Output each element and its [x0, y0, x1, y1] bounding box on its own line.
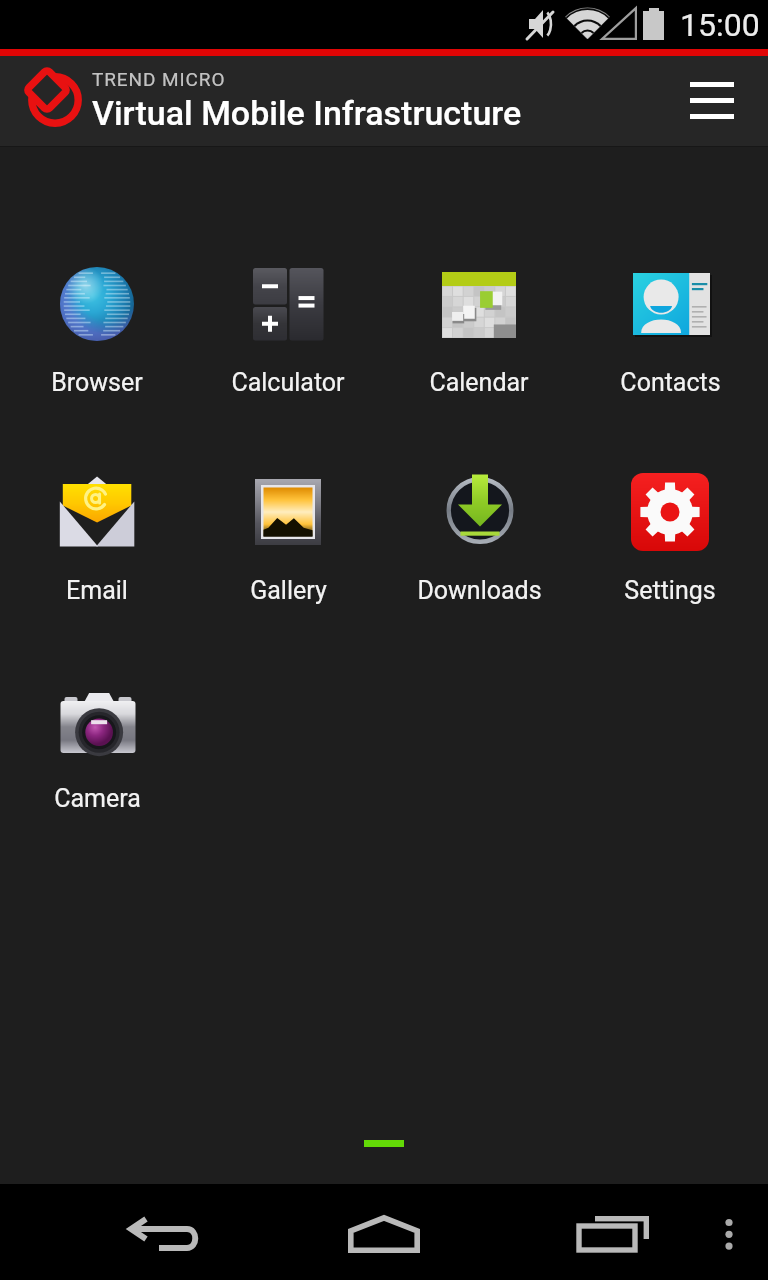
button[interactable]: Calculator [192, 264, 384, 416]
button[interactable]: Camera [1, 680, 193, 832]
button[interactable]: Back [104, 1184, 216, 1280]
staticText: Calculator [231, 368, 345, 397]
staticText: Settings [624, 576, 716, 605]
staticText: Virtual Mobile Infrastructure [92, 93, 522, 133]
button[interactable]: Downloads [383, 472, 575, 624]
staticText: Downloads [417, 576, 542, 605]
staticText: Email [66, 576, 128, 605]
button[interactable]: Recent apps [554, 1184, 666, 1280]
staticText: Browser [51, 368, 143, 397]
staticText: Camera [54, 784, 141, 813]
staticText: TREND MICRO [92, 68, 226, 90]
button[interactable]: Menu [673, 57, 751, 145]
button[interactable]: Home [328, 1184, 440, 1280]
button[interactable]: Contacts [574, 264, 766, 416]
staticText: Calendar [429, 368, 529, 397]
button[interactable]: Email [1, 472, 193, 624]
button[interactable]: Calendar [383, 264, 575, 416]
staticText: Gallery [250, 576, 327, 605]
button[interactable]: Settings [574, 472, 766, 624]
button[interactable]: More options [698, 1184, 758, 1280]
staticText: 15:00 [680, 6, 760, 44]
button[interactable]: Gallery [192, 472, 384, 624]
button[interactable]: Browser [1, 264, 193, 416]
staticText: Contacts [620, 368, 721, 397]
